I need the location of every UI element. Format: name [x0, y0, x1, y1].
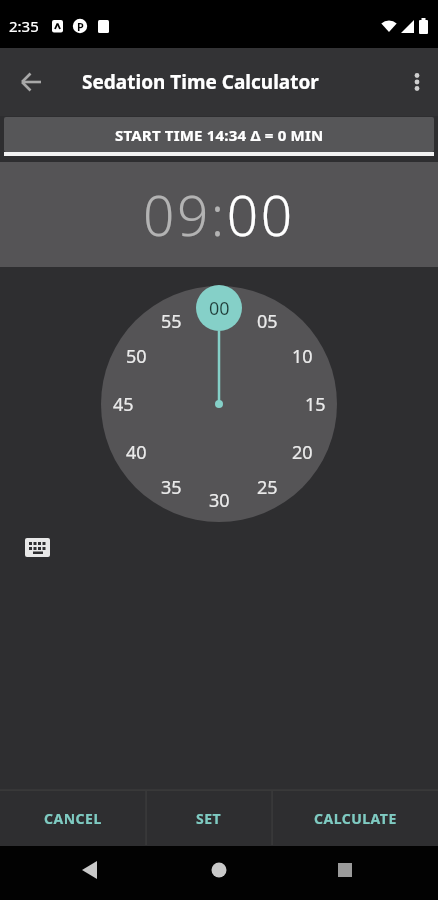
- staticText: 2:35: [9, 16, 39, 36]
- button[interactable]: 05: [247, 307, 287, 335]
- staticText: CANCEL: [44, 809, 102, 828]
- button[interactable]: SET: [146, 791, 272, 845]
- button[interactable]: 50: [116, 342, 156, 370]
- staticText: 50: [126, 344, 147, 369]
- button[interactable]: 20: [282, 438, 322, 466]
- button[interactable]: 45: [103, 390, 143, 418]
- button[interactable]: 15: [295, 390, 335, 418]
- button[interactable]: [17, 530, 57, 566]
- staticText: Sedation Time Calculator: [82, 69, 319, 95]
- staticText: 10: [292, 344, 313, 369]
- button[interactable]: [66, 846, 114, 900]
- staticText: 15: [305, 392, 326, 417]
- button[interactable]: [321, 846, 369, 900]
- staticText: CALCULATE: [314, 809, 397, 828]
- staticText: 20: [292, 440, 313, 465]
- staticText: 35: [161, 475, 182, 500]
- button[interactable]: 00: [199, 294, 239, 322]
- staticText: P: [77, 19, 84, 33]
- staticText: SET: [196, 809, 222, 828]
- staticText: 05: [257, 309, 278, 334]
- staticText: 30: [209, 488, 230, 513]
- staticText: 00: [209, 296, 230, 321]
- staticText: 09:00: [143, 177, 295, 252]
- button[interactable]: [195, 846, 243, 900]
- button[interactable]: 35: [151, 473, 191, 501]
- button[interactable]: 25: [247, 473, 287, 501]
- button[interactable]: 55: [151, 307, 191, 335]
- button[interactable]: CANCEL: [0, 791, 145, 845]
- staticText: 25: [257, 475, 278, 500]
- button[interactable]: 10: [282, 342, 322, 370]
- button[interactable]: 30: [199, 486, 239, 514]
- button[interactable]: 40: [116, 438, 156, 466]
- staticText: 40: [126, 440, 147, 465]
- staticText: START TIME 14:34 Δ = 0 MIN: [115, 125, 324, 145]
- button[interactable]: START TIME 14:34 Δ = 0 MIN: [4, 117, 434, 152]
- staticText: 55: [161, 309, 182, 334]
- button[interactable]: [398, 63, 436, 101]
- button[interactable]: CALCULATE: [272, 791, 438, 845]
- button[interactable]: [12, 63, 50, 101]
- staticText: 45: [113, 392, 134, 417]
